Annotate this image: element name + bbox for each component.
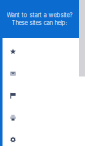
staticText: These sites can help: — [11, 19, 67, 26]
button[interactable]: Favourites — [2, 41, 79, 63]
button[interactable]: Print — [2, 107, 79, 129]
button[interactable]: Mail — [2, 63, 79, 85]
staticText: Want to start a website? — [6, 12, 72, 19]
button[interactable]: Flagged — [2, 85, 79, 107]
button[interactable]: Settings — [2, 129, 79, 151]
